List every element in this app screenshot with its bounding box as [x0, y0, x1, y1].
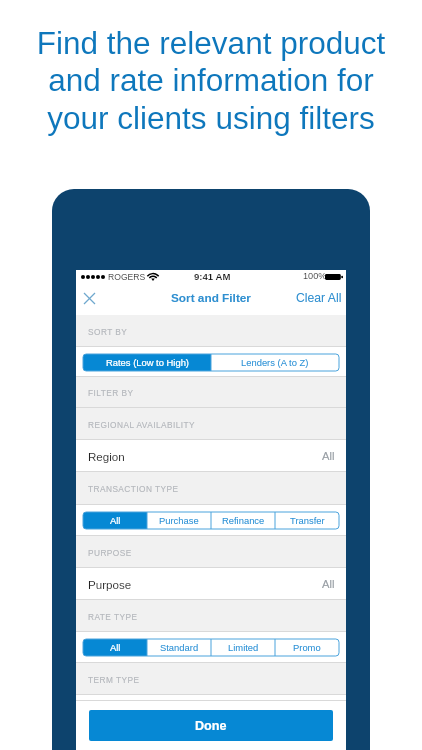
staticText: FILTER BY	[88, 388, 134, 397]
staticText: REGIONAL AVAILABILITY	[88, 420, 196, 429]
button[interactable]: Purchase	[147, 512, 211, 529]
staticText: All	[322, 450, 335, 463]
staticText: ROGERS	[108, 272, 146, 282]
staticText: Limited	[228, 642, 259, 653]
staticText: Purchase	[159, 515, 199, 526]
button[interactable]: Done	[89, 710, 333, 741]
button[interactable]: Limited	[211, 639, 275, 656]
staticText: 9:41 AM	[194, 271, 231, 282]
staticText: Done	[195, 719, 227, 733]
staticText: Rates (Low to High)	[106, 357, 189, 368]
staticText: All	[110, 642, 121, 653]
button[interactable]: Promo	[275, 639, 339, 656]
button[interactable]: Purpose	[76, 568, 346, 600]
staticText: Standard	[160, 642, 199, 653]
staticText: TERM TYPE	[88, 675, 140, 684]
button[interactable]: Refinance	[211, 512, 275, 529]
button[interactable]: Region	[76, 440, 346, 472]
staticText: Promo	[293, 642, 321, 653]
staticText: Purpose	[88, 578, 132, 591]
staticText: Refinance	[222, 515, 265, 526]
button[interactable]: Lenders (A to Z)	[211, 354, 339, 371]
button[interactable]: Close	[78, 287, 100, 309]
button[interactable]: Standard	[147, 639, 211, 656]
staticText: Transfer	[290, 515, 325, 526]
button[interactable]: All	[83, 512, 147, 529]
button[interactable]: Transfer	[275, 512, 339, 529]
staticText: Sort and Filter	[171, 291, 251, 304]
staticText: TRANSACTION TYPE	[88, 484, 179, 493]
button[interactable]: All	[83, 639, 147, 656]
staticText: Lenders (A to Z)	[241, 357, 309, 368]
staticText: SORT BY	[88, 327, 128, 336]
staticText: All	[322, 578, 335, 591]
button[interactable]: Rates (Low to High)	[83, 354, 211, 371]
staticText: Clear All	[296, 291, 342, 305]
staticText: All	[110, 515, 121, 526]
staticText: PURPOSE	[88, 548, 132, 557]
staticText: Region	[88, 450, 125, 463]
staticText: RATE TYPE	[88, 612, 138, 621]
staticText: 100%	[303, 271, 327, 281]
button[interactable]: Clear All	[292, 287, 346, 309]
staticText: Find the relevant product and rate infor…	[0, 25, 422, 136]
